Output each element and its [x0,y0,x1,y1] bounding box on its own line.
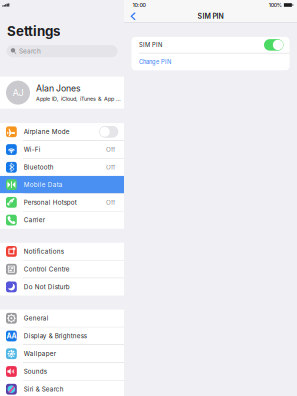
staticText: Sounds [24,368,47,375]
staticText: Airplane Mode [24,128,70,136]
staticText: Carrier [24,216,45,224]
staticText: Do Not Disturb [24,283,70,291]
button[interactable]: Wallpaper [0,345,124,362]
button[interactable]: Do Not Disturb [0,278,124,295]
staticText: AA [6,332,16,340]
button[interactable]: Bluetooth [0,159,124,176]
staticText: 10:00 [132,2,145,8]
button[interactable]: AA [0,327,124,345]
staticText: Apple ID, iCloud, iTunes & App St… [36,96,124,102]
staticText: Off [106,146,115,153]
button[interactable]: Sounds [0,363,124,380]
button[interactable]: Mobile Data [0,176,124,193]
button[interactable]: Back [124,10,142,22]
staticText: Notifications [24,248,64,255]
staticText: Search [19,47,41,55]
button[interactable]: Carrier [0,211,124,229]
staticText: Alan Jones [36,83,81,94]
staticText: SIM PIN [197,12,223,20]
button[interactable]: SIM PIN toggle [264,39,283,51]
staticText: AJ [12,87,23,98]
staticText: Wallpaper [24,350,56,357]
staticText: Off [106,163,115,171]
button[interactable]: Airplane Mode [0,123,124,140]
staticText: Personal Hotspot [24,199,77,206]
button[interactable]: Control Centre [0,260,124,278]
button[interactable]: Siri & Search [0,380,124,396]
staticText: Bluetooth [24,163,54,171]
button[interactable]: Change PIN [131,53,289,70]
staticText: Siri & Search [24,385,64,393]
staticText: General [24,314,49,322]
staticText: Wi-Fi [24,146,41,153]
staticText: 100% [269,2,282,8]
button[interactable]: Notifications [0,243,124,260]
button[interactable]: Wi-Fi [0,141,124,158]
staticText: Mobile Data [24,181,63,188]
staticText: Display & Brightness [24,332,87,340]
staticText: Settings [7,23,60,39]
staticText: SIM PIN [139,41,162,48]
button[interactable]: AJ [0,77,124,109]
staticText: Off [106,199,115,206]
button[interactable]: Personal Hotspot [0,194,124,211]
button[interactable]: General [0,310,124,327]
staticText: Control Centre [24,265,70,273]
staticText: Change PIN [139,58,171,65]
